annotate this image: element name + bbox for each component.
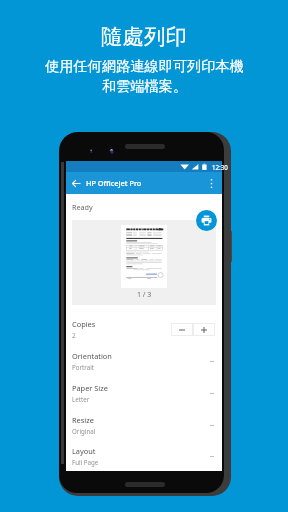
button[interactable]: Orientation [66,345,222,377]
staticText: Resize [72,415,94,425]
staticText: Letter [72,395,90,403]
button[interactable]: Print [196,210,217,231]
button[interactable]: Decrease copies [171,323,193,336]
staticText: Portrait [72,363,95,371]
button[interactable]: Back [66,173,86,193]
button[interactable]: More options [202,174,220,192]
staticText: 12:30 [212,163,228,171]
button[interactable]: Layout [66,441,222,471]
button[interactable]: Resize [66,409,222,441]
staticText: Layout [72,446,96,456]
staticText: 隨處列印 [101,23,187,50]
staticText: Full Page [72,458,99,466]
staticText: Original [72,427,96,435]
staticText: Paper Size [72,383,108,393]
staticText: 使用任何網路連線即可列印本機 和雲端檔案。 [45,57,244,95]
staticText: Copies [72,319,96,329]
button[interactable]: Paper Size [66,377,222,409]
staticText: HP OfficeJet Pro [86,178,142,188]
staticText: 1 / 3 [137,290,152,300]
staticText: Orientation [72,351,112,361]
staticText: Ready [72,202,93,212]
button[interactable]: Increase copies [193,323,215,336]
button[interactable]: Copies [66,313,222,345]
staticText: 2 [72,331,76,339]
